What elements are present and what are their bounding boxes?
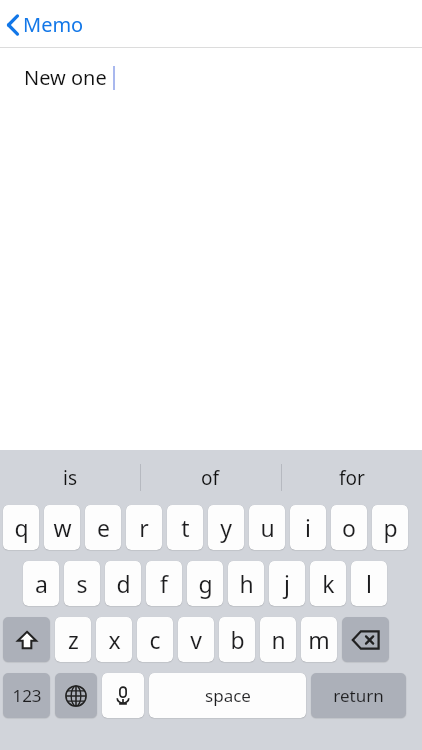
button[interactable]: q [3, 505, 39, 550]
button[interactable]: s [64, 561, 100, 606]
staticText: u [260, 512, 275, 543]
button[interactable]: b [219, 617, 255, 662]
button[interactable]: Shift [3, 617, 50, 662]
button[interactable]: c [137, 617, 173, 662]
button[interactable]: z [55, 617, 91, 662]
staticText: o [342, 512, 356, 543]
staticText: New one [24, 64, 107, 91]
button[interactable]: i [290, 505, 326, 550]
staticText: c [149, 624, 161, 655]
button[interactable]: u [249, 505, 285, 550]
button[interactable]: r [126, 505, 162, 550]
button[interactable]: x [96, 617, 132, 662]
staticText: k [322, 568, 335, 599]
button[interactable]: t [167, 505, 203, 550]
button[interactable]: n [260, 617, 296, 662]
staticText: space [205, 684, 251, 707]
staticText: m [308, 624, 330, 655]
staticText: for [339, 465, 365, 491]
staticText: a [35, 568, 48, 599]
button[interactable]: j [269, 561, 305, 606]
staticText: t [181, 512, 190, 543]
button[interactable]: of [140, 450, 281, 505]
staticText: w [53, 512, 72, 543]
button[interactable]: for [281, 450, 422, 505]
staticText: b [230, 624, 245, 655]
staticText: x [108, 624, 121, 655]
button[interactable]: is [0, 450, 140, 505]
button[interactable]: Backspace [342, 617, 389, 662]
staticText: q [14, 512, 29, 543]
button[interactable]: v [178, 617, 214, 662]
button[interactable]: return [311, 673, 406, 718]
staticText: of [201, 465, 220, 491]
staticText: y [220, 512, 232, 543]
button[interactable]: d [105, 561, 141, 606]
staticText: return [333, 684, 384, 707]
staticText: e [97, 512, 110, 543]
button[interactable]: w [44, 505, 80, 550]
button[interactable]: Switch keyboard [55, 673, 97, 718]
staticText: z [68, 624, 79, 655]
button[interactable]: a [23, 561, 59, 606]
staticText: j [284, 568, 290, 599]
button[interactable]: g [187, 561, 223, 606]
staticText: 123 [12, 684, 42, 707]
staticText: d [116, 568, 131, 599]
staticText: v [190, 624, 202, 655]
button[interactable]: l [351, 561, 387, 606]
button[interactable]: f [146, 561, 182, 606]
button[interactable]: k [310, 561, 346, 606]
button[interactable]: m [301, 617, 337, 662]
button[interactable]: Dictate [102, 673, 144, 718]
staticText: r [139, 512, 149, 543]
staticText: n [271, 624, 286, 655]
button[interactable]: o [331, 505, 367, 550]
button[interactable]: p [372, 505, 408, 550]
button[interactable]: y [208, 505, 244, 550]
staticText: is [63, 465, 78, 491]
button[interactable]: e [85, 505, 121, 550]
staticText: Memo [23, 11, 84, 38]
button[interactable]: h [228, 561, 264, 606]
staticText: h [239, 568, 254, 599]
button[interactable]: space [149, 673, 306, 718]
staticText: s [76, 568, 88, 599]
staticText: g [198, 568, 213, 599]
button[interactable]: 123 [3, 673, 50, 718]
staticText: i [305, 512, 311, 543]
button[interactable]: Memo [6, 11, 84, 38]
staticText: p [383, 512, 398, 543]
staticText: l [366, 568, 372, 599]
staticText: f [160, 568, 168, 599]
